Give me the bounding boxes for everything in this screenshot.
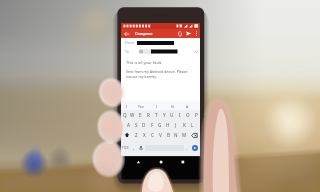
staticText: .	[186, 145, 188, 151]
button[interactable]: Y	[160, 110, 168, 120]
button[interactable]: More options	[193, 29, 200, 38]
button[interactable]: B	[164, 130, 172, 140]
button[interactable]: A	[181, 101, 194, 110]
button[interactable]: T	[152, 110, 160, 120]
button[interactable]: N	[172, 130, 180, 140]
staticText: Y	[163, 112, 166, 118]
staticText: I	[156, 104, 158, 108]
staticText: B	[167, 132, 170, 138]
staticText: Z	[135, 132, 138, 138]
button[interactable]: From	[121, 38, 200, 47]
staticText: J	[175, 122, 177, 128]
button[interactable]: A	[124, 120, 132, 130]
button[interactable]: U	[168, 110, 176, 120]
staticText: O	[186, 112, 190, 118]
button[interactable]: Back	[121, 29, 133, 38]
button[interactable]: F	[148, 120, 156, 130]
staticText: G	[158, 122, 162, 128]
staticText: You	[138, 104, 144, 108]
button[interactable]: To	[121, 47, 200, 56]
staticText: From	[125, 40, 134, 45]
button[interactable]: H	[164, 120, 172, 130]
button[interactable]: Space	[145, 140, 184, 156]
staticText: M	[182, 132, 187, 138]
button[interactable]: Z	[132, 130, 140, 140]
button[interactable]: D	[140, 120, 148, 130]
button[interactable]: Expand recipients	[192, 47, 200, 56]
staticText: L	[191, 122, 194, 128]
staticText: A	[127, 122, 130, 128]
button[interactable]: Send	[184, 29, 193, 38]
button[interactable]: P	[192, 110, 200, 120]
staticText: C	[151, 132, 154, 138]
button[interactable]: Voice input	[137, 140, 145, 156]
button[interactable]: ?123	[121, 140, 130, 156]
button[interactable]: Backspace	[188, 130, 200, 140]
staticText: Q	[123, 112, 127, 118]
button[interactable]: Send message	[190, 140, 200, 156]
button[interactable]: This is all your fault	[121, 56, 200, 101]
button[interactable]: I	[121, 101, 132, 110]
button[interactable]: .	[184, 140, 190, 156]
staticText: H	[166, 122, 170, 128]
button[interactable]: Hand holding phone showing Gmail compose…	[0, 0, 320, 192]
staticText: D	[142, 122, 146, 128]
button[interactable]: X	[140, 130, 148, 140]
staticText: W	[130, 112, 135, 118]
staticText: E	[139, 112, 142, 118]
staticText: V	[159, 132, 162, 138]
button[interactable]: You	[132, 101, 149, 110]
staticText: To	[125, 49, 129, 54]
button[interactable]: G	[156, 120, 164, 130]
staticText: R	[147, 112, 150, 118]
button[interactable]: C	[148, 130, 156, 140]
button[interactable]: Hi	[164, 101, 181, 110]
staticText: F	[151, 122, 154, 128]
button[interactable]: K	[180, 120, 188, 130]
button[interactable]: V	[156, 130, 164, 140]
staticText: X	[143, 132, 146, 138]
button[interactable]: I	[149, 101, 164, 110]
staticText: P	[195, 112, 198, 118]
button[interactable]: O	[184, 110, 192, 120]
button[interactable]: Attach file	[175, 29, 184, 38]
staticText: T	[155, 112, 158, 118]
button[interactable]: W	[128, 110, 136, 120]
staticText: I	[126, 104, 128, 108]
button[interactable]: S	[132, 120, 140, 130]
button[interactable]: Shift	[121, 130, 132, 140]
button[interactable]: I	[176, 110, 184, 120]
staticText: Sent from my Android device. Please excu…	[126, 69, 188, 79]
button[interactable]: M	[180, 130, 188, 140]
staticText: N	[174, 132, 178, 138]
staticText: U	[170, 112, 174, 118]
staticText: This is all your fault	[126, 60, 162, 65]
staticText: ?123	[122, 146, 129, 150]
button[interactable]: R	[144, 110, 152, 120]
button[interactable]: E	[136, 110, 144, 120]
staticText: A	[186, 104, 189, 108]
staticText: I	[179, 112, 181, 118]
staticText: S	[135, 122, 138, 128]
staticText: Hi	[171, 104, 175, 108]
button[interactable]: Q	[121, 110, 128, 120]
staticText: K	[183, 122, 186, 128]
staticText: ,	[133, 145, 135, 151]
staticText: Compose	[135, 31, 153, 36]
button[interactable]: ,	[130, 140, 137, 156]
button[interactable]: J	[172, 120, 180, 130]
button[interactable]: L	[188, 120, 196, 130]
